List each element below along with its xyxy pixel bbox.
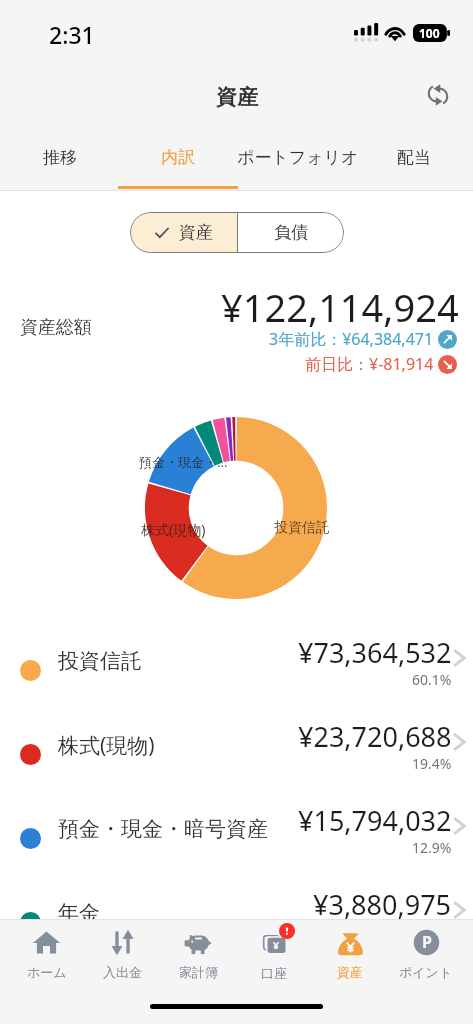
staticText: 株式(現物) bbox=[141, 520, 206, 539]
button[interactable]: 家計簿 bbox=[160, 920, 236, 988]
staticText: 3年前比：¥64,384,471 bbox=[269, 328, 434, 350]
staticText: P bbox=[422, 931, 432, 953]
staticText: ¥3,880,975 bbox=[313, 886, 452, 923]
button[interactable]: 入出金 bbox=[84, 920, 160, 988]
staticText: 前日比：¥-81,914 bbox=[305, 353, 434, 375]
button[interactable]: 配当 bbox=[355, 132, 473, 190]
button[interactable]: 資産 bbox=[312, 920, 388, 988]
staticText: ホーム bbox=[27, 964, 67, 980]
staticText: 資産 bbox=[337, 964, 363, 980]
button[interactable]: ポートフォリオ bbox=[237, 132, 355, 190]
staticText: 内訳 bbox=[161, 147, 195, 168]
staticText: 資産 bbox=[216, 84, 258, 110]
button[interactable]: P bbox=[388, 920, 464, 988]
staticText: 入出金 bbox=[103, 964, 142, 980]
button[interactable]: 年金 bbox=[0, 880, 473, 964]
button[interactable]: 投資信託 bbox=[0, 628, 473, 712]
button[interactable]: 預金・現金・暗号資産 bbox=[0, 796, 473, 880]
staticText: 19.4% bbox=[412, 754, 452, 773]
button[interactable]: ホーム bbox=[9, 920, 84, 988]
staticText: 預金・現金・... bbox=[139, 453, 228, 471]
button[interactable]: 株式(現物) bbox=[0, 712, 473, 796]
staticText: 投資信託 bbox=[58, 648, 142, 674]
button[interactable]: 内訳 bbox=[119, 132, 237, 190]
staticText: ¥15,794,032 bbox=[298, 802, 452, 839]
staticText: 配当 bbox=[397, 147, 431, 168]
button[interactable]: 負債 bbox=[237, 212, 344, 253]
staticText: 負債 bbox=[274, 222, 308, 243]
staticText: 12.9% bbox=[412, 838, 452, 857]
staticText: 株式(現物) bbox=[58, 731, 155, 760]
staticText: 推移 bbox=[43, 147, 77, 168]
staticText: 家計簿 bbox=[179, 964, 218, 980]
staticText: 3.1% bbox=[420, 922, 452, 941]
staticText: ポートフォリオ bbox=[237, 147, 355, 168]
button[interactable]: Refresh bbox=[417, 74, 459, 116]
staticText: 口座 bbox=[261, 965, 287, 981]
staticText: 資産 bbox=[179, 222, 213, 243]
staticText: 年金 bbox=[58, 900, 100, 926]
staticText: 60.1% bbox=[412, 670, 452, 689]
staticText: 投資信託 bbox=[274, 519, 330, 537]
staticText: 100 bbox=[419, 25, 440, 41]
button[interactable]: 資産 bbox=[130, 212, 237, 253]
staticText: ポイント bbox=[399, 964, 453, 980]
button[interactable]: 口座 bbox=[236, 920, 312, 988]
staticText: 資産総額 bbox=[20, 316, 92, 339]
staticText: ¥73,364,532 bbox=[298, 634, 452, 671]
button[interactable]: 推移 bbox=[0, 132, 119, 190]
staticText: 2:31 bbox=[49, 19, 95, 50]
staticText: 預金・現金・暗号資産 bbox=[58, 816, 268, 842]
staticText: ¥122,114,924 bbox=[221, 281, 459, 333]
staticText: ¥23,720,688 bbox=[298, 718, 452, 755]
